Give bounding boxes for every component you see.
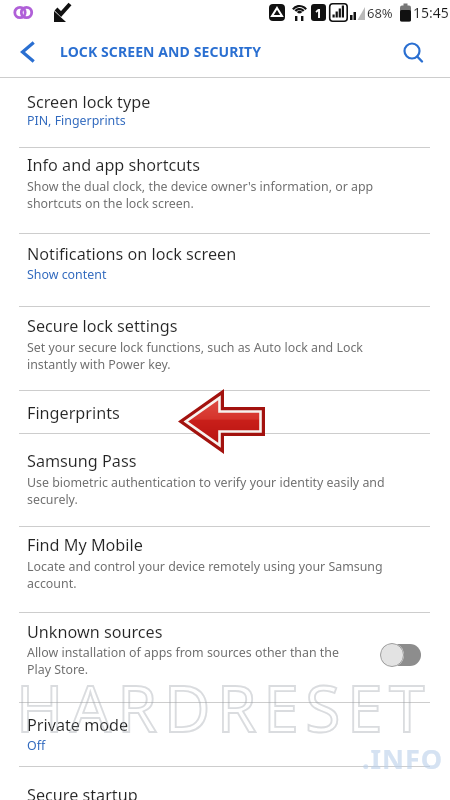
staticText: Use biometric authentication to verify y… [27, 474, 385, 508]
staticText: Show the dual clock, the device owner's … [27, 178, 374, 212]
staticText: PIN, Fingerprints [27, 112, 126, 129]
staticText: Allow installation of apps from sources … [27, 644, 339, 678]
staticText: Locate and control your device remotely … [27, 558, 383, 592]
button[interactable] [402, 42, 426, 66]
button[interactable]: Info and app shortcuts [0, 147, 450, 233]
staticText: Info and app shortcuts [27, 154, 200, 176]
staticText: 1 [315, 5, 322, 21]
staticText: Samsung Pass [27, 450, 137, 472]
staticText: Secure lock settings [27, 315, 178, 337]
button[interactable]: Secure startup [0, 766, 450, 800]
staticText: Notifications on lock screen [27, 243, 237, 265]
staticText: Private mode [27, 714, 129, 736]
staticText: Set your secure lock functions, such as … [27, 339, 363, 373]
staticText: LOCK SCREEN AND SECURITY [60, 42, 262, 61]
button[interactable]: Private mode [0, 702, 450, 766]
staticText: Find My Mobile [27, 534, 143, 556]
staticText: Unknown sources [27, 621, 163, 643]
staticText: Fingerprints [27, 402, 120, 424]
button[interactable]: Fingerprints [0, 390, 450, 433]
staticText: Show content [27, 266, 107, 283]
staticText: 68% [367, 4, 393, 22]
button[interactable]: Unknown sources [0, 612, 450, 702]
staticText: .INFO [362, 740, 444, 777]
button[interactable]: Samsung Pass [0, 433, 450, 526]
staticText: Secure startup [27, 784, 138, 800]
staticText: Off [27, 737, 46, 754]
button[interactable] [18, 42, 38, 62]
staticText: HARDRESET [16, 664, 432, 751]
button[interactable]: Screen lock type [0, 77, 450, 147]
button[interactable]: Secure lock settings [0, 306, 450, 390]
button[interactable]: Find My Mobile [0, 526, 450, 612]
button[interactable] [376, 636, 426, 674]
button[interactable]: Notifications on lock screen [0, 233, 450, 306]
staticText: 15:45 [413, 3, 449, 22]
staticText: Screen lock type [27, 91, 151, 113]
